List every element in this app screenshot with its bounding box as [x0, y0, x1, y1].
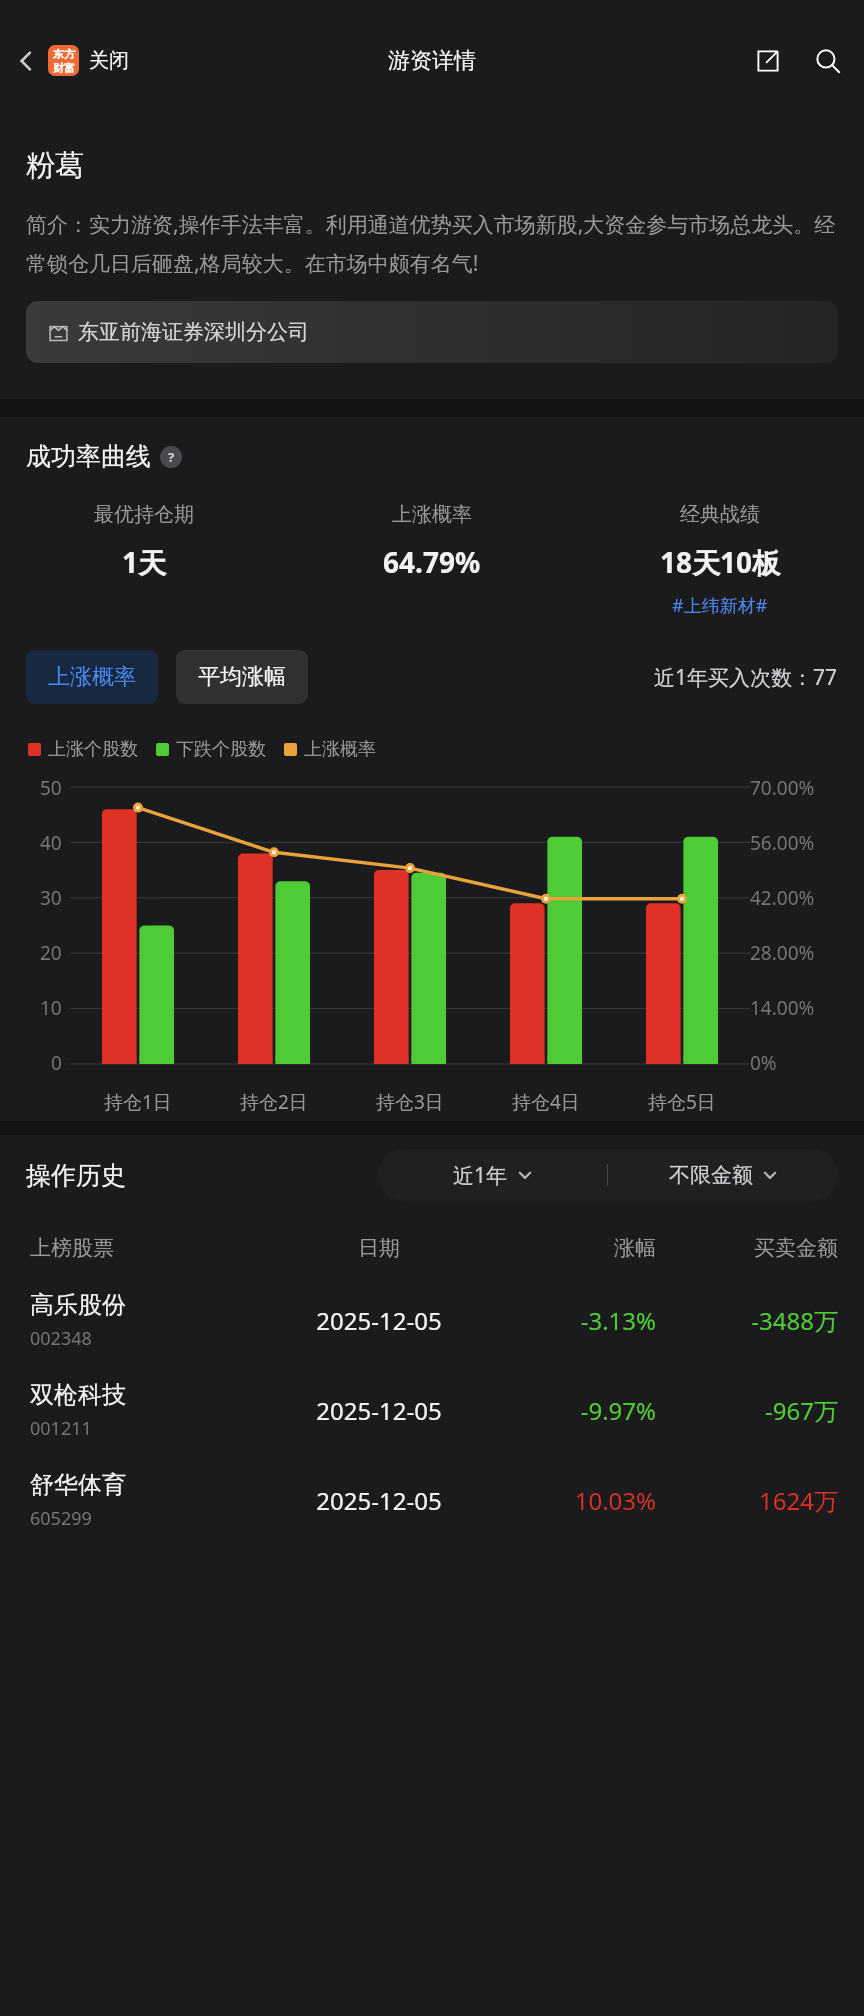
staticText: 持仓5日 [648, 1089, 716, 1115]
staticText: 10 [40, 995, 62, 1021]
staticText: 操作历史 [26, 1160, 126, 1191]
staticText: 日期 [260, 1235, 498, 1261]
staticText: 28.00% [750, 940, 815, 966]
staticText: 18天10板 [660, 543, 781, 581]
staticText: 0 [51, 1050, 62, 1076]
staticText: 财富 [53, 61, 75, 75]
staticText: 605299 [30, 1506, 92, 1531]
staticText: 上涨个股数 [48, 738, 138, 761]
button[interactable]: 上涨概率 [26, 650, 158, 704]
button[interactable]: Help [160, 446, 182, 468]
staticText: 20 [40, 940, 62, 966]
staticText: 2025-12-05 [260, 1304, 498, 1337]
staticText: 持仓1日 [104, 1089, 172, 1115]
staticText: 50 [40, 775, 62, 801]
staticText: ? [168, 448, 175, 466]
button[interactable]: 东方 [48, 45, 129, 76]
staticText: -9.97% [498, 1394, 656, 1427]
staticText: 近1年 [453, 1161, 508, 1190]
button[interactable]: 近1年 [378, 1149, 607, 1201]
button[interactable]: 舒华体育 [0, 1455, 864, 1545]
staticText: 0% [750, 1050, 777, 1076]
staticText: 持仓4日 [512, 1089, 580, 1115]
staticText: 高乐股份 [30, 1290, 126, 1320]
staticText: 上涨概率 [48, 663, 136, 691]
button[interactable]: 东亚前海证券深圳分公司 [26, 301, 838, 363]
staticText: 成功率曲线 [26, 441, 151, 472]
staticText: 简介：实力游资,操作手法丰富。利用通道优势买入市场新股,大资金参与市场总龙头。经… [26, 210, 838, 277]
button[interactable]: 高乐股份 [0, 1275, 864, 1365]
staticText: 上榜股票 [30, 1235, 260, 1261]
staticText: 近1年买入次数：77 [654, 663, 838, 692]
staticText: 东亚前海证券深圳分公司 [78, 319, 309, 345]
staticText: 1天 [122, 543, 167, 581]
staticText: 40 [40, 830, 62, 856]
staticText: 42.00% [750, 885, 815, 911]
staticText: 舒华体育 [30, 1470, 126, 1500]
button[interactable]: 双枪科技 [0, 1365, 864, 1455]
staticText: 2025-12-05 [260, 1484, 498, 1517]
staticText: 上涨概率 [304, 738, 376, 761]
button[interactable]: #上纬新材# [672, 593, 768, 618]
staticText: 下跌个股数 [176, 738, 266, 761]
staticText: 56.00% [750, 830, 815, 856]
staticText: 经典战绩 [680, 502, 760, 527]
staticText: 64.79% [383, 543, 481, 581]
staticText: 70.00% [750, 775, 815, 801]
button[interactable]: Search [804, 37, 852, 85]
staticText: -967万 [656, 1394, 838, 1427]
staticText: 10.03% [498, 1484, 656, 1517]
staticText: 001211 [30, 1416, 92, 1441]
button[interactable]: Share [744, 37, 792, 85]
staticText: 粉葛 [26, 147, 84, 184]
staticText: 2025-12-05 [260, 1394, 498, 1427]
staticText: 持仓2日 [240, 1089, 308, 1115]
staticText: 东方 [53, 47, 75, 61]
staticText: 持仓3日 [376, 1089, 444, 1115]
staticText: 1624万 [656, 1484, 838, 1517]
staticText: 关闭 [89, 48, 129, 73]
staticText: 涨幅 [498, 1235, 656, 1261]
button[interactable]: Back [4, 39, 48, 83]
staticText: 上涨概率 [392, 502, 472, 527]
staticText: 平均涨幅 [198, 663, 286, 691]
staticText: 买卖金额 [656, 1235, 838, 1261]
staticText: 双枪科技 [30, 1380, 126, 1410]
staticText: 14.00% [750, 995, 815, 1021]
button[interactable]: 不限金额 [608, 1149, 838, 1201]
staticText: -3488万 [656, 1304, 838, 1337]
staticText: 30 [40, 885, 62, 911]
staticText: 游资详情 [388, 47, 476, 75]
staticText: -3.13% [498, 1304, 656, 1337]
button[interactable]: 平均涨幅 [176, 650, 308, 704]
staticText: 002348 [30, 1326, 92, 1351]
staticText: 不限金额 [669, 1162, 753, 1188]
staticText: 最优持仓期 [94, 502, 194, 527]
